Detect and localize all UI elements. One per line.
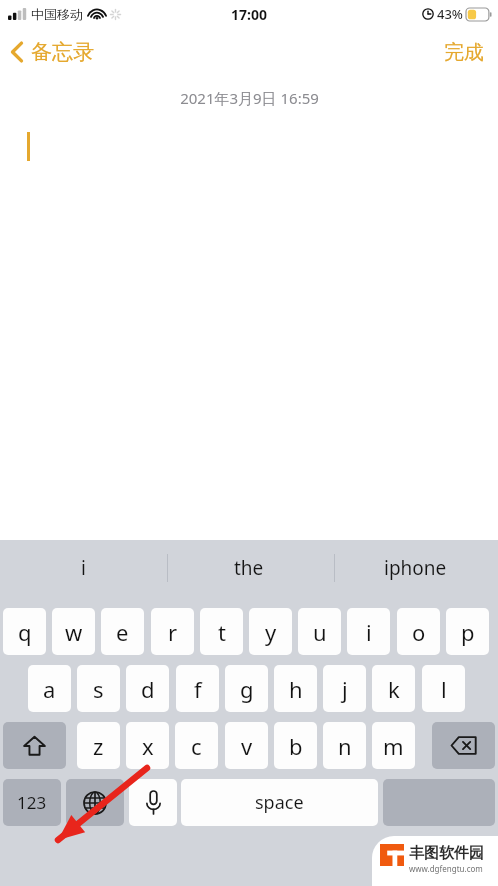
staticText: z	[93, 731, 104, 761]
button[interactable]: i	[347, 608, 390, 655]
button[interactable]: f	[176, 665, 219, 712]
button[interactable]: p	[446, 608, 489, 655]
staticText: 2021年3月9日 16:59	[180, 88, 319, 108]
button[interactable]: i	[0, 540, 166, 596]
button[interactable]: the	[166, 540, 332, 596]
staticText: l	[441, 674, 447, 704]
staticText: t	[218, 617, 226, 647]
button[interactable]: k	[372, 665, 415, 712]
button[interactable]: x	[126, 722, 169, 769]
staticText: 丰图软件园	[409, 844, 484, 863]
button[interactable]: q	[3, 608, 46, 655]
staticText: the	[234, 555, 264, 581]
staticText: u	[313, 617, 327, 647]
staticText: b	[289, 731, 303, 761]
button[interactable]: o	[397, 608, 440, 655]
staticText: i	[366, 617, 372, 647]
button[interactable]: w	[52, 608, 95, 655]
button[interactable]: c	[175, 722, 218, 769]
button[interactable]: 2021年3月9日 16:59	[0, 76, 498, 540]
staticText: x	[142, 731, 154, 761]
staticText: o	[412, 617, 426, 647]
staticText: w	[65, 617, 83, 647]
staticText: 备忘录	[31, 39, 94, 65]
staticText: 123	[17, 791, 47, 814]
button[interactable]: b	[274, 722, 317, 769]
button[interactable]: Delete	[432, 722, 495, 769]
button[interactable]: e	[101, 608, 144, 655]
staticText: space	[255, 790, 304, 815]
button[interactable]: r	[151, 608, 194, 655]
button[interactable]: 123	[3, 779, 61, 826]
staticText: iphone	[384, 555, 447, 581]
staticText: 43%	[437, 5, 463, 23]
staticText: c	[191, 731, 202, 761]
staticText: www.dgfengtu.com	[409, 863, 483, 874]
button[interactable]: j	[323, 665, 366, 712]
staticText: r	[168, 617, 178, 647]
button[interactable]: l	[422, 665, 465, 712]
staticText: j	[342, 674, 348, 704]
button[interactable]: h	[274, 665, 317, 712]
staticText: m	[383, 731, 404, 761]
staticText: k	[388, 674, 400, 704]
button[interactable]: a	[28, 665, 71, 712]
button[interactable]: 备忘录	[0, 35, 104, 69]
button[interactable]: s	[77, 665, 120, 712]
button[interactable]: y	[249, 608, 292, 655]
staticText: f	[194, 674, 202, 704]
staticText: 完成	[444, 40, 484, 65]
staticText: y	[265, 617, 277, 647]
staticText: a	[43, 674, 56, 704]
button[interactable]: z	[77, 722, 120, 769]
button[interactable]: u	[298, 608, 341, 655]
staticText: e	[116, 617, 129, 647]
button[interactable]: Dictate	[129, 779, 177, 826]
staticText: g	[240, 674, 254, 704]
staticText: s	[93, 674, 104, 704]
staticText: 中国移动	[31, 6, 83, 22]
button[interactable]: Next keyboard	[66, 779, 124, 826]
button[interactable]: 完成	[430, 34, 498, 71]
button[interactable]: m	[372, 722, 415, 769]
button[interactable]: n	[323, 722, 366, 769]
button[interactable]: d	[126, 665, 169, 712]
staticText: h	[289, 674, 303, 704]
button[interactable]: iphone	[332, 540, 498, 596]
staticText: d	[141, 674, 155, 704]
staticText: p	[461, 617, 475, 647]
staticText: 17:00	[231, 5, 267, 24]
staticText: q	[18, 617, 32, 647]
button[interactable]: v	[225, 722, 268, 769]
button[interactable]: g	[225, 665, 268, 712]
button[interactable]: space	[181, 779, 378, 826]
staticText: n	[338, 731, 352, 761]
staticText: v	[241, 731, 253, 761]
button[interactable]: t	[200, 608, 243, 655]
button[interactable]: Shift	[3, 722, 66, 769]
staticText: i	[81, 555, 86, 581]
